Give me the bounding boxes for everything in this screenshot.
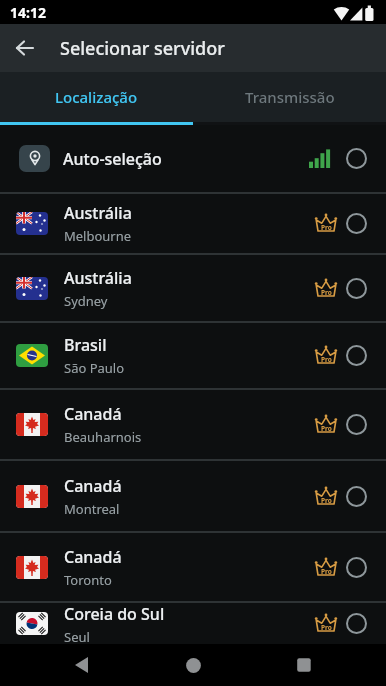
button[interactable]: Canadá: [0, 461, 386, 531]
staticText: Brasil: [64, 334, 107, 356]
button[interactable]: Localização: [0, 72, 193, 122]
staticText: Austrália: [64, 202, 132, 224]
staticText: Transmissão: [245, 87, 335, 107]
button[interactable]: Austrália: [0, 194, 386, 253]
staticText: Austrália: [64, 267, 132, 289]
button[interactable]: [173, 644, 213, 686]
staticText: Seul: [64, 628, 90, 644]
staticText: Pro: [321, 567, 332, 576]
staticText: Toronto: [64, 571, 112, 589]
staticText: Pro: [321, 496, 332, 505]
button[interactable]: [284, 644, 324, 686]
button[interactable]: Austrália: [0, 255, 386, 321]
staticText: Sydney: [64, 292, 108, 310]
button[interactable]: Transmissão: [193, 72, 386, 122]
button[interactable]: [0, 24, 50, 72]
staticText: Coreia do Sul: [64, 603, 165, 625]
staticText: Canadá: [64, 403, 122, 425]
button[interactable]: Canadá: [0, 533, 386, 601]
staticText: Pro: [321, 223, 332, 232]
staticText: Montreal: [64, 500, 120, 518]
staticText: Pro: [321, 288, 332, 297]
staticText: Pro: [321, 355, 332, 364]
staticText: Canadá: [64, 475, 122, 497]
staticText: Beauharnois: [64, 428, 142, 446]
staticText: Canadá: [64, 546, 122, 568]
staticText: Pro: [321, 424, 332, 433]
staticText: São Paulo: [64, 359, 125, 377]
staticText: Auto-seleção: [63, 148, 162, 170]
staticText: 14:12: [10, 3, 46, 22]
staticText: Selecionar servidor: [60, 36, 225, 61]
button[interactable]: Canadá: [0, 390, 386, 459]
button[interactable]: Auto-seleção: [0, 125, 386, 192]
staticText: Pro: [321, 623, 332, 632]
staticText: Melbourne: [64, 227, 132, 245]
button[interactable]: [62, 644, 102, 686]
staticText: Localização: [55, 87, 138, 107]
button[interactable]: Coreia do Sul: [0, 603, 386, 644]
button[interactable]: Brasil: [0, 323, 386, 388]
